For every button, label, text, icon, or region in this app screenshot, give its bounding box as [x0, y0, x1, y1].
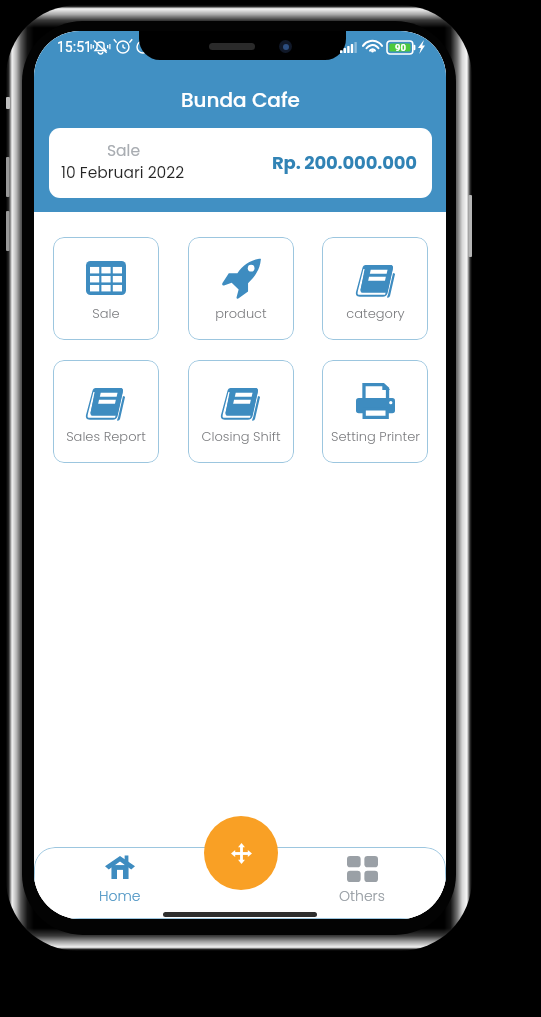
staticText: Sale	[92, 304, 120, 322]
button[interactable]: Others	[301, 847, 422, 919]
staticText: Setting Printer	[331, 427, 420, 445]
staticText: 90	[395, 42, 406, 53]
staticText: product	[215, 304, 267, 322]
button[interactable]: Sales Report	[53, 360, 159, 463]
staticText: Bunda Cafe	[181, 86, 300, 114]
button[interactable]: Setting Printer	[322, 360, 428, 463]
button[interactable]: Sale	[49, 128, 432, 198]
staticText: 15:51	[57, 39, 92, 55]
staticText: Sales Report	[66, 427, 146, 445]
staticText: category	[346, 304, 405, 322]
staticText: Sale	[107, 140, 140, 162]
staticText: Rp. 200.000.000	[272, 150, 417, 175]
button[interactable]: Home	[59, 847, 180, 919]
staticText: Home	[99, 886, 141, 906]
button[interactable]: category	[322, 237, 428, 340]
staticText: 10 Februari 2022	[61, 162, 185, 184]
button[interactable]: product	[188, 237, 294, 340]
button[interactable]: Move	[204, 816, 278, 890]
staticText: Closing Shift	[201, 427, 281, 445]
button[interactable]: Closing Shift	[188, 360, 294, 463]
button[interactable]: Sale	[53, 237, 159, 340]
staticText: Others	[339, 886, 385, 906]
